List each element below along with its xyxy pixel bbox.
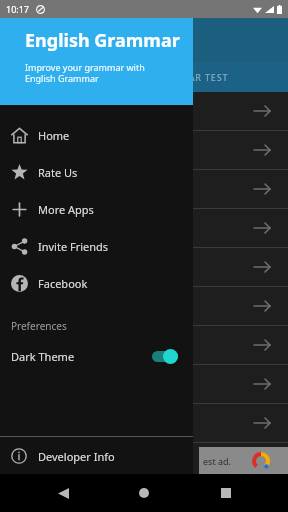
button[interactable]: est ad. bbox=[199, 447, 288, 474]
button[interactable] bbox=[0, 443, 288, 481]
staticText: Facebook bbox=[38, 276, 88, 291]
staticText: Preferences bbox=[11, 319, 67, 333]
button[interactable] bbox=[0, 287, 288, 325]
button[interactable]: Developer Info bbox=[0, 437, 193, 475]
staticText: Rate Us bbox=[38, 165, 78, 180]
staticText: GRAMMAR TEST bbox=[150, 71, 229, 83]
button[interactable]: Dark Theme bbox=[0, 340, 193, 372]
button[interactable]: Home bbox=[125, 474, 163, 512]
staticText: Dark Theme bbox=[11, 349, 75, 364]
button[interactable]: GRAMMAR TEST bbox=[0, 62, 288, 92]
button[interactable] bbox=[0, 365, 288, 403]
staticText: Invite Friends bbox=[38, 239, 109, 254]
button[interactable]: Facebook bbox=[0, 265, 193, 302]
button[interactable]: Rate Us bbox=[0, 154, 193, 191]
other: Dark Theme toggle bbox=[150, 348, 180, 364]
button[interactable]: Back bbox=[44, 474, 82, 512]
button[interactable]: Invite Friends bbox=[0, 228, 193, 265]
button[interactable] bbox=[0, 92, 288, 130]
button[interactable] bbox=[0, 326, 288, 364]
staticText: Home bbox=[38, 128, 70, 143]
staticText: est ad. bbox=[203, 455, 231, 467]
button[interactable]: More Apps bbox=[0, 191, 193, 228]
button[interactable] bbox=[0, 131, 288, 169]
button[interactable] bbox=[0, 170, 288, 208]
staticText: 10:17 bbox=[6, 3, 30, 15]
staticText: Developer Info bbox=[38, 449, 115, 464]
button[interactable] bbox=[0, 248, 288, 286]
staticText: More Apps bbox=[38, 202, 94, 217]
staticText: Improve your grammar with English Gramma… bbox=[25, 61, 145, 85]
button[interactable]: Home bbox=[0, 117, 193, 154]
staticText: English Grammar bbox=[25, 28, 180, 53]
button[interactable]: Recent apps bbox=[207, 474, 245, 512]
button[interactable] bbox=[0, 404, 288, 442]
button[interactable] bbox=[0, 209, 288, 247]
